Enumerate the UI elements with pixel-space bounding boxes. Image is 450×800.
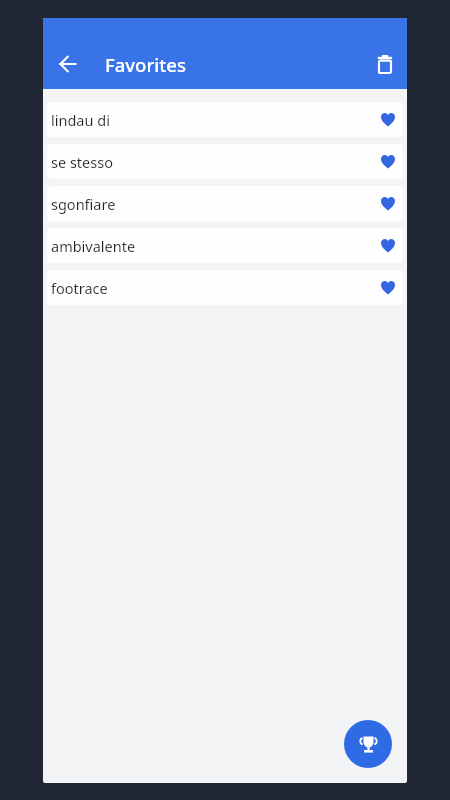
staticText: sgonfiare bbox=[51, 194, 116, 214]
button[interactable]: se stesso bbox=[47, 144, 403, 179]
button[interactable] bbox=[363, 42, 407, 86]
staticText: lindau di bbox=[51, 110, 110, 130]
staticText: Favorites bbox=[105, 52, 186, 77]
button[interactable]: ambivalente bbox=[47, 228, 403, 263]
staticText: ambivalente bbox=[51, 236, 136, 256]
staticText: se stesso bbox=[51, 152, 113, 172]
button[interactable] bbox=[44, 40, 92, 88]
button[interactable]: lindau di bbox=[47, 102, 403, 137]
button[interactable] bbox=[344, 720, 392, 768]
button[interactable]: sgonfiare bbox=[47, 186, 403, 221]
staticText: footrace bbox=[51, 278, 108, 298]
button[interactable]: footrace bbox=[47, 270, 403, 305]
